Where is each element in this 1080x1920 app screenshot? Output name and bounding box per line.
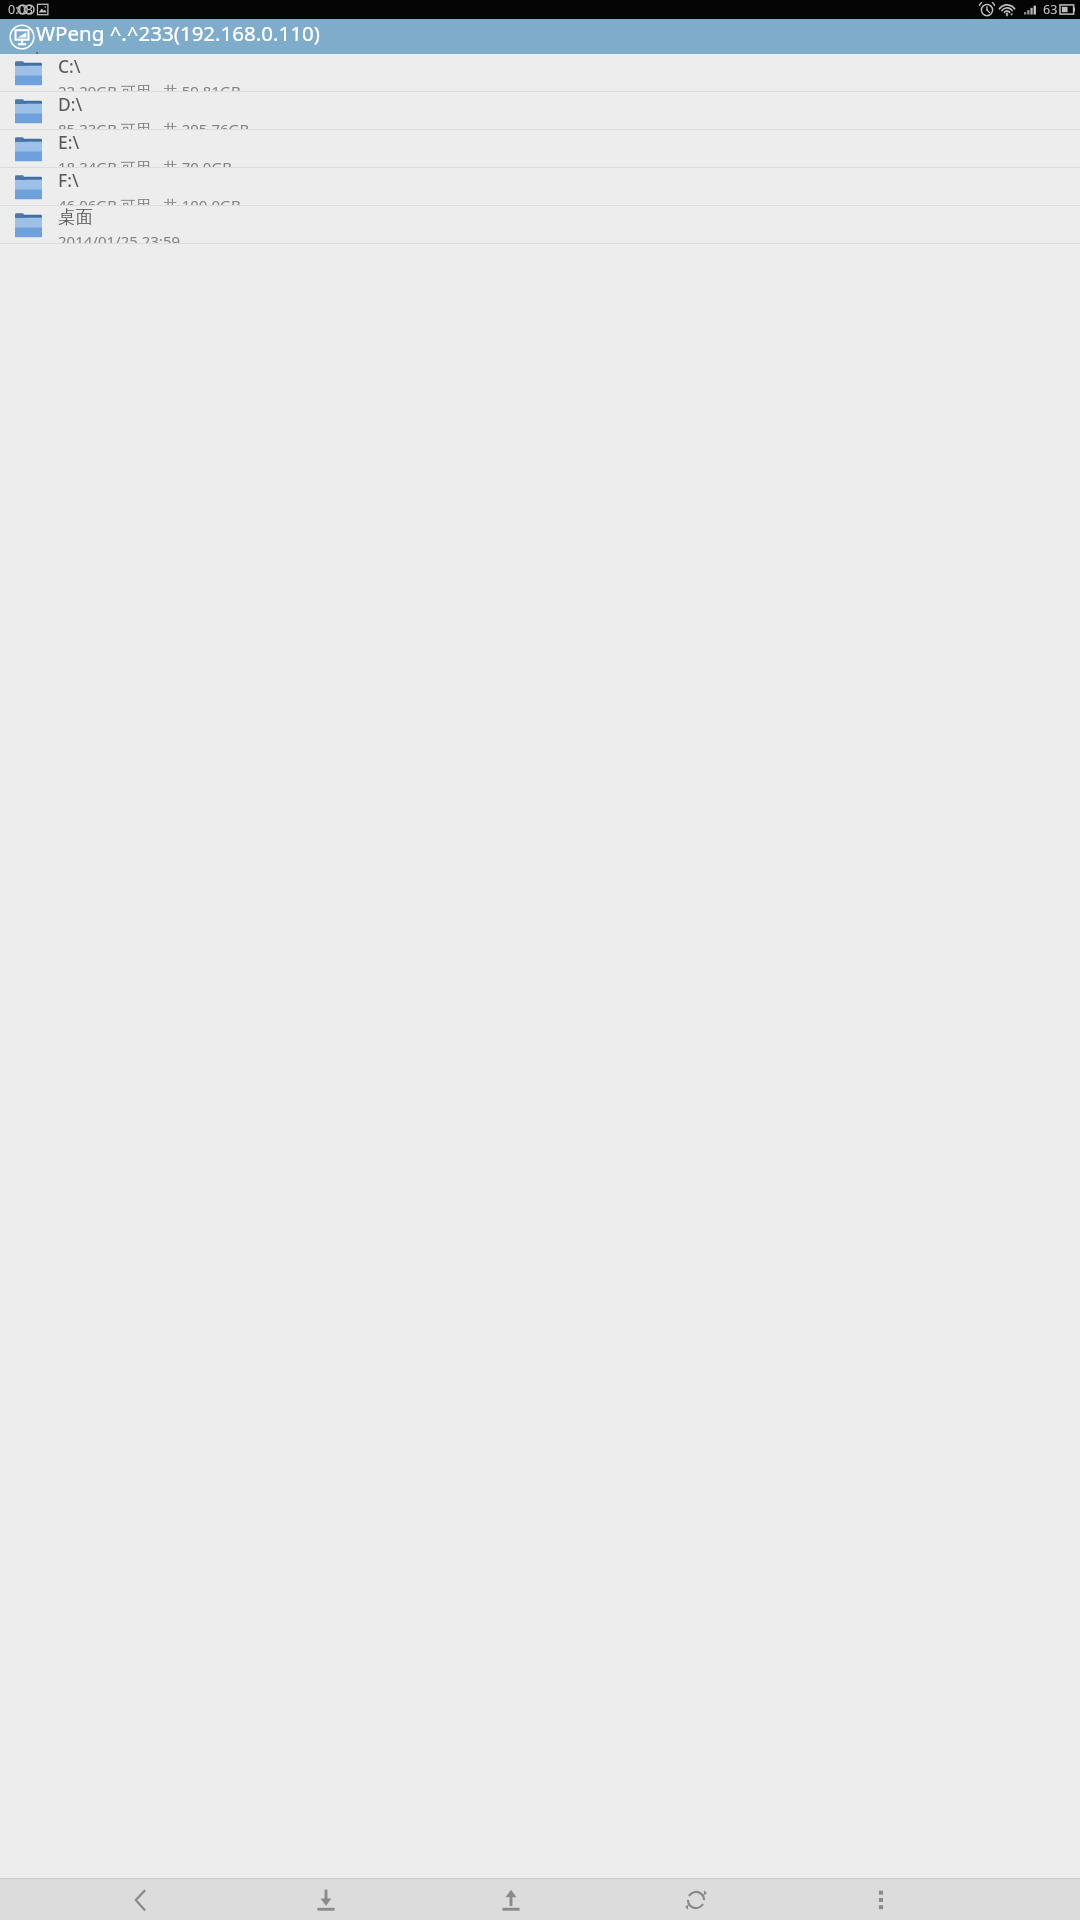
staticText: 桌面 [58, 206, 93, 228]
staticText: F:\ [58, 168, 79, 192]
button[interactable]: F:\ [0, 168, 1080, 205]
staticText: 46.06GB 可用 , 共 100.0GB [58, 195, 241, 205]
button[interactable]: D:\ [0, 92, 1080, 129]
staticText: WPeng ^.^233(192.168.0.110) [36, 19, 320, 47]
button[interactable]: Computer [0, 19, 1080, 54]
staticText: C:\ [58, 54, 81, 78]
staticText: E:\ [58, 130, 80, 154]
staticText: 2014/01/25 23:59 [58, 231, 181, 243]
button[interactable]: C:\ [0, 54, 1080, 91]
staticText: 0:03 [8, 1, 33, 18]
other: Computer [9, 24, 35, 50]
staticText: 85.33GB 可用 , 共 295.76GB [58, 119, 250, 129]
button[interactable]: Upload [490, 1879, 532, 1920]
button[interactable]: 桌面 [0, 206, 1080, 243]
staticText: D:\ [58, 92, 83, 116]
staticText: 63 [1043, 1, 1058, 18]
button[interactable]: Download [305, 1879, 347, 1920]
button[interactable]: Back [120, 1879, 162, 1920]
button[interactable]: Refresh [675, 1879, 717, 1920]
staticText: \ [36, 47, 41, 54]
button[interactable]: More options [860, 1879, 902, 1920]
staticText: 22.29GB 可用 , 共 59.81GB [58, 81, 241, 91]
staticText: 18.34GB 可用 , 共 70.0GB [58, 157, 233, 167]
button[interactable]: E:\ [0, 130, 1080, 167]
